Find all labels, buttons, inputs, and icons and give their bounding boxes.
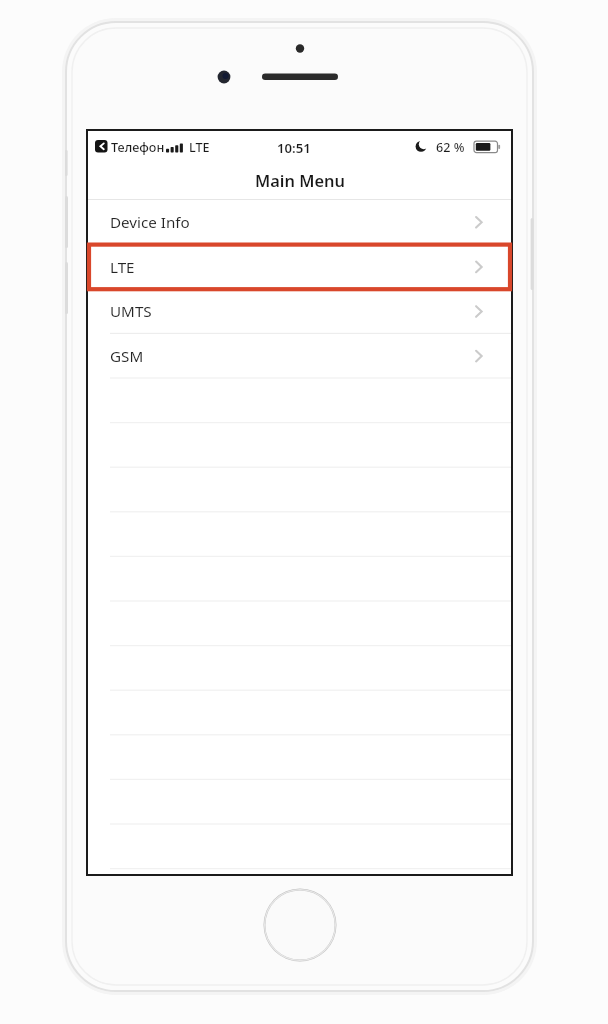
staticText: 62 % [436, 139, 465, 156]
staticText: 10:51 [277, 139, 311, 157]
staticText: GSM [110, 346, 144, 367]
staticText: Device Info [110, 212, 190, 233]
staticText: Main Menu [255, 169, 345, 191]
button[interactable]: LTE [88, 245, 511, 290]
button[interactable]: GSM [88, 334, 511, 379]
button[interactable]: Device Info [88, 200, 511, 245]
button[interactable]: UMTS [88, 289, 511, 334]
staticText: LTE [110, 257, 135, 278]
staticText: UMTS [110, 301, 152, 322]
button[interactable]: Home [264, 889, 336, 961]
staticText: Телефон [111, 139, 165, 156]
staticText: LTE [189, 139, 210, 156]
